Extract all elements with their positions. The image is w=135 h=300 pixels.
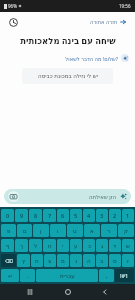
button[interactable]: ף — [1, 239, 14, 252]
button[interactable]: 1 — [122, 209, 134, 222]
button[interactable]: ו — [50, 224, 66, 237]
button[interactable]: Recents — [22, 284, 38, 300]
button[interactable]: ב — [96, 254, 108, 267]
staticText: ן — [40, 228, 42, 234]
button[interactable]: , — [99, 269, 114, 282]
staticText: 3 — [100, 212, 104, 219]
staticText: ע — [74, 243, 78, 249]
staticText: שיחה עם בינה מלאכותית — [20, 35, 116, 47]
button[interactable]: !#1 — [115, 269, 134, 282]
button[interactable]: ק — [118, 224, 134, 237]
button[interactable]: פ — [1, 224, 16, 237]
staticText: 4 — [87, 212, 91, 219]
button[interactable]: ה — [83, 254, 95, 267]
staticText: 9 — [20, 212, 24, 219]
button[interactable]: חזרה אחורה — [87, 16, 129, 27]
staticText: נ — [75, 258, 78, 264]
staticText: שלום! מה הדבר לשאול? — [65, 55, 118, 62]
staticText: 2 — [113, 212, 117, 219]
staticText: ש — [126, 243, 130, 249]
button[interactable]: Home — [60, 284, 76, 300]
button[interactable]: 3 — [96, 209, 108, 222]
button[interactable]: ס — [109, 254, 121, 267]
button[interactable]: ת — [31, 254, 43, 267]
staticText: ך — [20, 243, 23, 249]
staticText: פ — [7, 228, 11, 234]
staticText: א — [90, 228, 94, 234]
button[interactable]: 7 — [43, 209, 56, 222]
button[interactable]: 8 — [29, 209, 42, 222]
staticText: ו — [57, 228, 59, 234]
staticText: צ — [48, 258, 52, 264]
button[interactable]: נ — [70, 254, 82, 267]
button[interactable]: 2 — [109, 209, 121, 222]
button[interactable]: Back — [97, 284, 113, 300]
staticText: עברית — [60, 273, 75, 279]
staticText: ר — [107, 228, 111, 234]
button[interactable]: ר — [101, 224, 117, 237]
staticText: 7 — [48, 212, 52, 219]
button[interactable]: ע — [70, 239, 82, 252]
staticText: ד — [113, 243, 117, 249]
staticText: . — [27, 272, 29, 279]
staticText: 96% — [8, 3, 17, 9]
staticText: ג — [101, 243, 104, 249]
staticText: ם — [23, 228, 27, 234]
button[interactable]: כ — [83, 239, 95, 252]
button[interactable]: צ — [44, 254, 56, 267]
staticText: ץ — [22, 258, 25, 264]
button[interactable]: עברית — [36, 269, 98, 282]
staticText: 0 — [6, 212, 10, 219]
button[interactable]: ם — [17, 224, 32, 237]
button[interactable]: ↵ — [1, 269, 19, 282]
staticText: מ — [61, 258, 65, 264]
staticText: 19:56 — [119, 3, 131, 9]
button[interactable]: 4 — [83, 209, 95, 222]
button[interactable]: יש לי נזילה במכונת כביסה — [22, 68, 113, 84]
staticText: כ — [88, 243, 91, 249]
staticText: יש לי נזילה במכונת כביסה — [38, 72, 98, 80]
button[interactable]: ץ — [17, 254, 30, 267]
staticText: 5 — [74, 212, 78, 219]
button[interactable]: ז — [122, 254, 134, 267]
staticText: ↵ — [8, 273, 13, 279]
button[interactable]: ח — [43, 239, 56, 252]
staticText: חזרה אחורה — [90, 18, 118, 25]
staticText: 6 — [61, 212, 65, 219]
button[interactable]: א — [84, 224, 100, 237]
staticText: ז — [127, 258, 129, 264]
button[interactable]: 6 — [57, 209, 69, 222]
button[interactable]: 5 — [70, 209, 82, 222]
staticText: !#1 — [120, 272, 129, 279]
staticText: ב — [100, 258, 104, 264]
button[interactable]: Camera — [4, 189, 131, 204]
staticText: 8 — [34, 212, 38, 219]
button[interactable]: ך — [15, 239, 28, 252]
staticText: ⌫ — [5, 258, 13, 264]
staticText: הזן שאילתה — [89, 193, 117, 200]
button[interactable]: History — [6, 15, 20, 29]
button[interactable]: 0 — [1, 209, 14, 222]
button[interactable]: ⌫ — [1, 254, 16, 267]
button[interactable]: מ — [57, 254, 69, 267]
button[interactable]: ן — [33, 224, 49, 237]
staticText: ס — [113, 258, 117, 264]
staticText: ת — [35, 258, 39, 264]
staticText: 1 — [126, 212, 130, 219]
button[interactable]: ט — [67, 224, 83, 237]
button[interactable]: ד — [109, 239, 121, 252]
button[interactable]: י — [57, 239, 69, 252]
staticText: ח — [48, 243, 52, 249]
button[interactable]: Camera — [8, 191, 19, 202]
button[interactable]: ש — [122, 239, 134, 252]
staticText: ל — [34, 243, 38, 249]
button[interactable]: ל — [29, 239, 42, 252]
button[interactable]: ג — [96, 239, 108, 252]
staticText: ף — [6, 243, 10, 249]
staticText: , — [106, 272, 108, 279]
staticText: ט — [73, 228, 77, 234]
button[interactable]: 9 — [15, 209, 28, 222]
staticText: י — [62, 243, 64, 249]
staticText: ק — [124, 228, 128, 234]
button[interactable]: . — [20, 269, 35, 282]
